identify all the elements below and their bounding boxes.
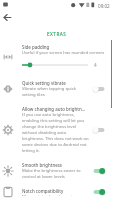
staticText: EXTRAS [47,31,67,37]
staticText: Side padding [22,44,50,50]
staticText: Moves status bar elements [22,194,75,196]
button[interactable]: EXTRAS [47,31,67,37]
button[interactable]: Quick setting vibrate [0,76,113,102]
staticText: Notch compatibility [22,188,64,194]
staticText: Allow changing auto brightn… [22,106,86,112]
staticText: Smooth brightness [22,162,62,168]
staticText: Useful if your screen has rounded corner… [22,50,105,56]
button[interactable]: Allow changing auto brightn… [0,102,113,158]
staticText: If you use auto brightness, enabling thi… [22,112,89,154]
staticText: Vibrate when tapping quick setting tiles [22,86,89,98]
staticText: Quick setting vibrate [22,80,66,86]
staticText: 4 [94,62,97,68]
button[interactable]: Smooth brightness [0,158,113,184]
button[interactable]: Side padding [0,40,113,76]
staticText: 09:02 [98,3,110,9]
staticText: Make the brightness easier to control at… [22,168,89,180]
button[interactable]: Notch compatibility [0,184,113,200]
button[interactable]: Back [2,12,13,23]
